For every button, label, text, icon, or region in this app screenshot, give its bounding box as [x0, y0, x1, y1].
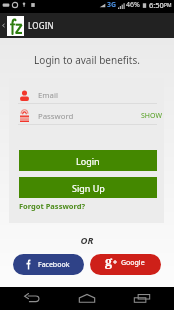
- staticText: Facebook: [38, 260, 70, 270]
- staticText: 46%: [126, 0, 140, 10]
- staticText: OR: [0, 234, 174, 247]
- staticText: Sign Up: [72, 182, 105, 194]
- button[interactable]: Sign Up: [19, 177, 157, 198]
- button[interactable]: Email: [9, 86, 164, 104]
- staticText: 6:50: [149, 0, 164, 10]
- button[interactable]: Recent apps: [119, 287, 165, 310]
- button[interactable]: Home: [64, 287, 110, 310]
- staticText: g: [105, 254, 113, 270]
- staticText: PM: [164, 2, 172, 9]
- button[interactable]: Back: [0, 13, 7, 38]
- staticText: Password: [38, 111, 74, 122]
- button[interactable]: Back: [9, 287, 55, 310]
- staticText: Google: [121, 258, 145, 268]
- staticText: 3G: [107, 0, 117, 10]
- button[interactable]: g: [90, 254, 161, 275]
- button[interactable]: Password: [9, 107, 164, 125]
- button[interactable]: Forgot Password?: [19, 201, 86, 211]
- staticText: Login: [76, 155, 100, 167]
- button[interactable]: Login: [19, 150, 157, 171]
- button[interactable]: Facebook: [13, 254, 84, 275]
- staticText: LOGIN: [28, 20, 54, 31]
- staticText: SHOW: [141, 111, 162, 121]
- staticText: Email: [38, 90, 59, 101]
- staticText: Login to avail benefits.: [0, 53, 174, 67]
